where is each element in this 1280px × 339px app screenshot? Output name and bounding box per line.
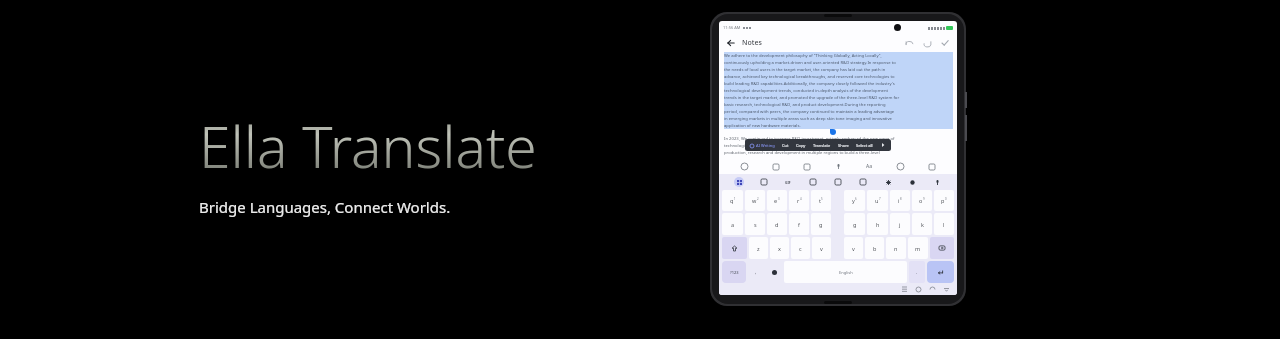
staticText: advance, achieved key technological brea… — [724, 74, 895, 80]
button[interactable]: k — [912, 213, 932, 235]
button[interactable]: Keyboard tool 8 — [907, 177, 917, 187]
staticText: k — [921, 221, 924, 228]
button[interactable]: r — [789, 190, 809, 211]
button[interactable]: AI Writing — [750, 143, 775, 148]
button[interactable]: i — [890, 190, 910, 211]
button[interactable]: Select all — [856, 143, 873, 148]
button[interactable]: x — [770, 237, 789, 259]
button[interactable]: o — [912, 190, 932, 211]
button[interactable]: h — [867, 213, 888, 235]
button[interactable]: l — [934, 213, 954, 235]
button[interactable]: Symbols — [722, 261, 746, 283]
button[interactable]: c — [791, 237, 810, 259]
button[interactable]: w — [745, 190, 765, 211]
button[interactable]: More options — [880, 142, 886, 148]
staticText: build leading R&D capabilities.Additiona… — [724, 81, 895, 87]
button[interactable]: Recents — [899, 284, 910, 295]
staticText: l — [943, 221, 945, 228]
button[interactable]: Undo — [903, 37, 915, 49]
staticText: Copy — [796, 143, 806, 148]
button[interactable]: Clipboard — [926, 161, 937, 172]
button[interactable]: Backspace — [930, 237, 954, 259]
button[interactable]: Check — [895, 161, 906, 172]
staticText: period, compared with peers, the company… — [724, 109, 895, 115]
button[interactable]: m — [908, 237, 928, 259]
button[interactable]: n — [886, 237, 906, 259]
staticText: Ella Translate — [199, 107, 537, 185]
button[interactable]: a — [722, 213, 743, 235]
button[interactable]: s — [745, 213, 765, 235]
button[interactable]: q — [722, 190, 743, 211]
button[interactable]: g — [844, 213, 865, 235]
staticText: g — [853, 221, 857, 228]
button[interactable]: t — [811, 190, 831, 211]
staticText: b — [873, 245, 877, 252]
staticText: p — [941, 197, 945, 204]
button[interactable]: Space — [784, 261, 907, 283]
staticText: s — [754, 221, 757, 228]
button[interactable]: z — [749, 237, 768, 259]
button[interactable]: Home — [913, 284, 924, 295]
button[interactable]: Keyboard tool 4 — [808, 177, 818, 187]
staticText: , — [755, 269, 757, 275]
button[interactable]: Hide keyboard — [941, 284, 952, 295]
button[interactable]: Copy — [796, 143, 806, 148]
staticText: d — [775, 221, 779, 228]
staticText: i — [898, 197, 900, 204]
button[interactable]: j — [890, 213, 910, 235]
button[interactable]: Keyboard tool 2 — [759, 177, 769, 187]
button[interactable]: Redo — [921, 37, 933, 49]
button[interactable]: Share — [838, 143, 849, 148]
staticText: g — [819, 221, 823, 228]
button[interactable]: Done — [939, 37, 951, 49]
staticText: in emerging markets in multiple areas su… — [724, 116, 892, 122]
button[interactable]: Keyboard tool 6 — [858, 177, 868, 187]
staticText: x — [778, 245, 781, 252]
button[interactable]: Keyboard tool 7 — [883, 177, 893, 187]
staticText: h — [876, 221, 880, 228]
button[interactable]: Enter — [927, 261, 954, 283]
button[interactable]: v — [844, 237, 863, 259]
button[interactable]: Image — [801, 161, 812, 172]
button[interactable]: u — [867, 190, 888, 211]
button[interactable]: p — [934, 190, 954, 211]
button[interactable]: Keyboard tool 9 — [932, 177, 942, 187]
button[interactable]: Font — [864, 161, 875, 172]
staticText: 0 — [945, 197, 947, 201]
button[interactable]: Back — [725, 37, 737, 49]
button[interactable]: Keyboard tool 5 — [833, 177, 843, 187]
button[interactable]: Cut — [782, 143, 789, 148]
button[interactable]: f — [789, 213, 809, 235]
staticText: technological development trends, conduc… — [724, 88, 889, 94]
staticText: 5 — [821, 197, 823, 201]
staticText: Cut — [782, 143, 789, 148]
staticText: Share — [838, 143, 849, 148]
button[interactable]: Language — [766, 261, 782, 283]
button[interactable]: Back — [927, 284, 938, 295]
staticText: application of new hardware materials. — [724, 123, 801, 129]
button[interactable]: d — [767, 213, 787, 235]
button[interactable]: y — [844, 190, 865, 211]
button[interactable]: Keyboard tool 1 — [734, 177, 744, 187]
staticText: GIF — [785, 180, 791, 185]
staticText: 9 — [923, 197, 925, 201]
button[interactable]: Sticker — [770, 161, 781, 172]
staticText: m — [915, 245, 921, 252]
staticText: 2 — [757, 197, 759, 201]
button[interactable]: Shift — [722, 237, 747, 259]
button[interactable]: Comma — [748, 261, 764, 283]
button[interactable]: e — [767, 190, 787, 211]
button[interactable]: Voice — [833, 161, 844, 172]
button[interactable]: b — [865, 237, 884, 259]
staticText: In 2023, We continued to increase R&D in… — [724, 136, 895, 142]
staticText: English — [839, 270, 853, 275]
button[interactable]: v — [812, 237, 831, 259]
staticText: Notes — [742, 38, 762, 48]
staticText: . — [916, 269, 918, 275]
staticText: continuously upholding a market-driven a… — [724, 60, 896, 66]
button[interactable]: Emoji — [739, 161, 750, 172]
button[interactable]: Translate — [813, 143, 831, 148]
button[interactable]: g — [811, 213, 831, 235]
button[interactable]: Keyboard tool 3 — [783, 177, 793, 187]
